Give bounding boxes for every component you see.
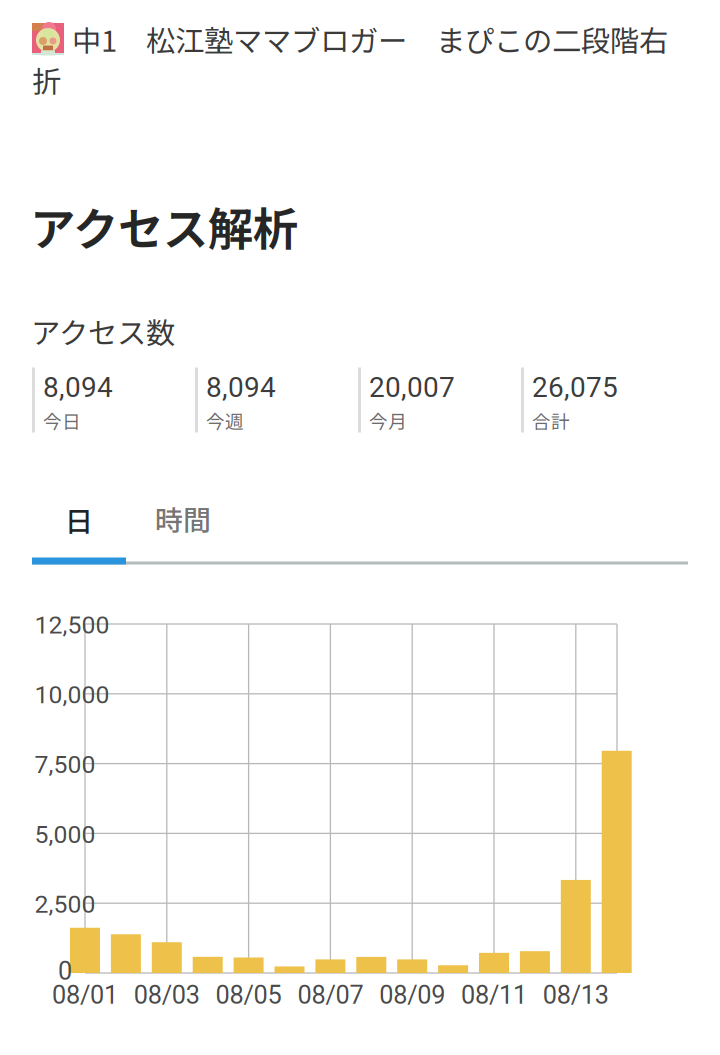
staticText: 合計 (532, 407, 570, 434)
staticText: 5,000 (35, 820, 96, 849)
staticText: 2,500 (35, 890, 96, 919)
staticText: 7,500 (35, 750, 96, 779)
staticText: 08/05 (216, 980, 282, 1010)
staticText: 8,094 (206, 371, 276, 404)
staticText: 08/01 (52, 980, 118, 1010)
staticText: 12,500 (35, 610, 110, 640)
staticText: 08/03 (134, 980, 200, 1010)
staticText: 08/07 (297, 980, 363, 1010)
staticText: 20,007 (369, 371, 455, 404)
staticText: 0 (58, 956, 72, 986)
staticText: 08/09 (379, 980, 445, 1010)
staticText: 08/13 (543, 980, 609, 1010)
staticText: アクセス数 (31, 310, 175, 352)
staticText: 26,075 (532, 371, 618, 404)
staticText: 時間 (155, 498, 211, 539)
staticText: 今週 (206, 407, 244, 434)
button[interactable]: 日 (32, 481, 126, 564)
staticText: 08/11 (461, 980, 527, 1010)
staticText: アクセス解析 (30, 193, 298, 259)
staticText: 日 (65, 499, 93, 540)
staticText: 今月 (369, 407, 407, 434)
staticText: 8,094 (43, 371, 113, 404)
button[interactable]: 時間 (128, 482, 238, 554)
staticText: 今日 (43, 407, 81, 434)
staticText: 10,000 (35, 680, 110, 709)
staticText: 折 (32, 59, 61, 101)
button[interactable]: 中1 松江塾ママブロガー まぴこの二段階右 (32, 18, 720, 100)
staticText: 中1 松江塾ママブロガー まぴこの二段階右 (72, 18, 668, 60)
